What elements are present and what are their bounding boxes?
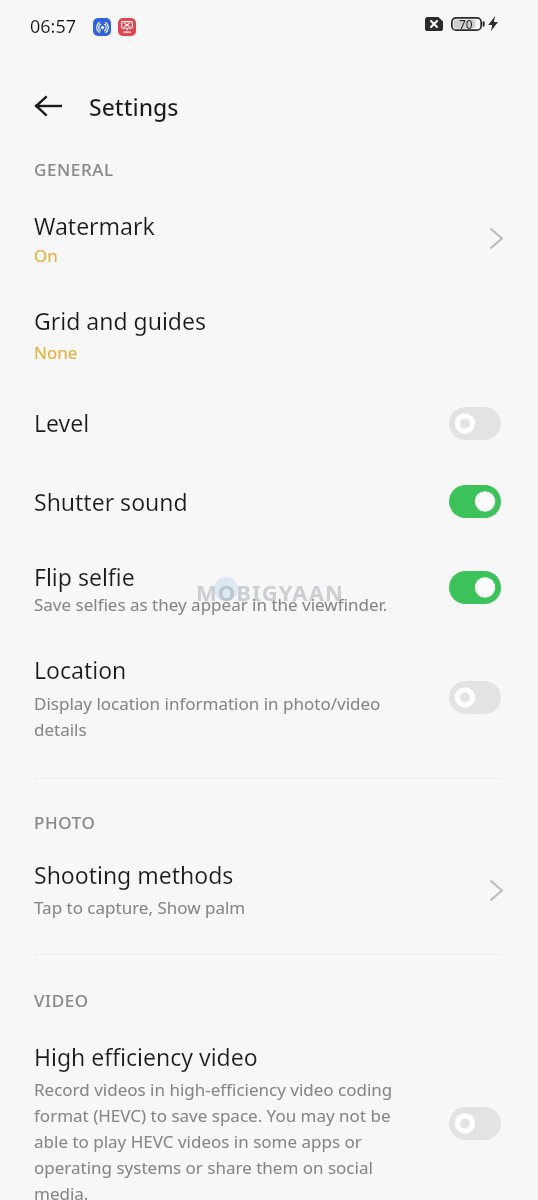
button[interactable]: Toggle — [449, 407, 501, 440]
button[interactable]: Back — [29, 87, 67, 125]
staticText: Flip selfie — [34, 561, 135, 592]
button[interactable]: Toggle — [449, 681, 501, 714]
button[interactable]: Toggle — [449, 485, 501, 518]
staticText: Level — [34, 407, 90, 438]
button[interactable]: Watermark — [34, 210, 399, 241]
staticText: Location — [34, 654, 127, 685]
staticText: Shooting methods — [34, 859, 234, 890]
button[interactable]: Grid and guides — [34, 305, 399, 336]
button[interactable]: High efficiency video — [34, 1041, 399, 1072]
staticText: 06:57 — [30, 14, 77, 39]
staticText: Grid and guides — [34, 305, 206, 336]
staticText: On — [34, 244, 399, 267]
staticText: Watermark — [34, 210, 155, 241]
staticText: Settings — [89, 91, 179, 122]
button[interactable]: Open — [476, 218, 516, 258]
staticText: Tap to capture, Show palm — [34, 896, 399, 919]
button[interactable]: Shutter sound — [34, 486, 399, 517]
staticText: Display location information in photo/vi… — [34, 692, 399, 741]
staticText: Shutter sound — [34, 486, 188, 517]
staticText: None — [34, 341, 399, 364]
button[interactable]: Flip selfie — [34, 561, 399, 592]
button[interactable]: PHOTO — [34, 811, 96, 834]
button[interactable]: Toggle — [449, 571, 501, 604]
staticText: Record videos in high-efficiency video c… — [34, 1078, 399, 1200]
staticText: MOBIGYAAN — [196, 577, 344, 607]
button[interactable]: Toggle — [449, 1107, 501, 1140]
staticText: Save selfies as they appear in the viewf… — [34, 593, 399, 616]
button[interactable]: Location — [34, 654, 399, 685]
button[interactable]: GENERAL — [34, 158, 114, 181]
button[interactable]: VIDEO — [34, 989, 89, 1012]
staticText: High efficiency video — [34, 1041, 258, 1072]
staticText: 70 — [459, 16, 473, 30]
button[interactable]: Shooting methods — [34, 859, 399, 890]
button[interactable]: Open — [476, 870, 516, 910]
button[interactable]: Level — [34, 407, 399, 438]
